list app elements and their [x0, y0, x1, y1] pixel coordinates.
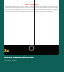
staticText: Lawyers: Populists and the law — [4, 56, 34, 59]
staticText: 2x — [4, 48, 9, 54]
button[interactable]: Play video — [4, 45, 59, 55]
staticText: Populists and the law. In many countries… — [5, 5, 58, 13]
staticText: The Economist — [4, 3, 59, 6]
button[interactable]: Lawyers: Populists and the law — [4, 56, 59, 61]
staticText: Aug 29th 2020 — [4, 59, 17, 61]
button[interactable]: The Economist — [4, 0, 59, 45]
